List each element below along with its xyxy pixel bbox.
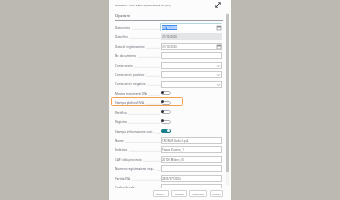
button[interactable]: [111, 154, 223, 164]
button[interactable]: 20100 Milano, (I): [161, 156, 222, 163]
staticText: Data di registrazione: [115, 45, 145, 49]
staticText: 01/10/2020: [162, 26, 177, 30]
button[interactable]: 2805/9772004: [161, 175, 222, 182]
button[interactable]: 31/10/2020: [161, 43, 222, 50]
staticText: Rettifica: [115, 111, 127, 115]
staticText: Indirizzo: [115, 148, 128, 152]
button[interactable]: Off: [161, 91, 171, 95]
button[interactable]: Off: [161, 101, 171, 105]
staticText: Stampa informazione soci...: [115, 130, 155, 134]
button[interactable]: 31/10/2020: [161, 33, 222, 40]
button[interactable]: [111, 164, 223, 174]
staticText: Conto arrot. negativo: [115, 82, 146, 86]
button[interactable]: [111, 60, 223, 70]
staticText: Nr. documento: [115, 54, 137, 58]
button[interactable]: [111, 79, 223, 89]
button[interactable]: Invia a...: [153, 190, 169, 197]
button[interactable]: Off: [161, 120, 171, 124]
staticText: CAP città provincia: [115, 158, 142, 162]
staticText: MODIFICA - CALC E RES LIQUIDAZIONE IVA (…: [115, 3, 171, 6]
button[interactable]: CRONUS Italia S.p.A.: [161, 137, 222, 144]
button[interactable]: [161, 81, 222, 88]
staticText: Partita IVA: [115, 177, 130, 181]
staticText: Anteprima: [192, 192, 204, 195]
button[interactable]: Anteprima: [189, 190, 207, 197]
button[interactable]: [161, 184, 222, 191]
button[interactable]: Off: [161, 110, 171, 114]
button[interactable]: [161, 71, 222, 78]
staticText: Stampa plafond N/A: [115, 101, 144, 105]
button[interactable]: [111, 107, 223, 117]
button[interactable]: [111, 126, 223, 136]
button[interactable]: Stampa: [171, 190, 187, 197]
button[interactable]: [111, 51, 223, 61]
staticText: 20100 Milano, (I): [162, 158, 184, 162]
staticText: Numero registrazione imp...: [115, 167, 156, 171]
button[interactable]: [161, 165, 222, 172]
button[interactable]: [111, 136, 223, 146]
button[interactable]: On: [161, 129, 171, 133]
button[interactable]: Expand: [213, 0, 223, 10]
staticText: 2805/9772004: [162, 177, 181, 181]
staticText: Annulla: [212, 192, 221, 195]
button[interactable]: [111, 98, 223, 108]
button[interactable]: [111, 23, 223, 33]
button[interactable]: [111, 117, 223, 127]
button[interactable]: [161, 52, 222, 59]
button[interactable]: [111, 173, 223, 183]
staticText: Codice fiscale: [115, 186, 135, 190]
button[interactable]: [111, 32, 223, 42]
staticText: Data fine: [115, 35, 128, 39]
staticText: Stampa: [175, 192, 184, 195]
staticText: Piazza Duomo, 1: [162, 148, 184, 152]
button[interactable]: Piazza Duomo, 1: [161, 146, 222, 153]
button[interactable]: [111, 41, 223, 51]
staticText: Conto arrot. positivo: [115, 73, 145, 77]
button[interactable]: [111, 145, 223, 155]
staticText: Mostra movimenti IVA: [115, 92, 147, 96]
staticText: 31/10/2020: [162, 35, 177, 39]
staticText: Conto erario: [115, 64, 133, 68]
staticText: Invia a...: [156, 192, 166, 195]
button[interactable]: [111, 70, 223, 80]
staticText: Nome: [115, 139, 124, 143]
staticText: CRONUS Italia S.p.A.: [162, 139, 189, 143]
button[interactable]: 01/10/2020: [161, 24, 222, 31]
staticText: Opzioni: [115, 13, 131, 19]
button[interactable]: Annulla: [210, 190, 223, 197]
button[interactable]: [111, 89, 223, 99]
staticText: 31/10/2020: [162, 45, 177, 49]
button[interactable]: [161, 62, 222, 69]
button[interactable]: [111, 183, 223, 193]
staticText: Data inizio: [115, 26, 131, 30]
staticText: Registra: [115, 120, 127, 124]
